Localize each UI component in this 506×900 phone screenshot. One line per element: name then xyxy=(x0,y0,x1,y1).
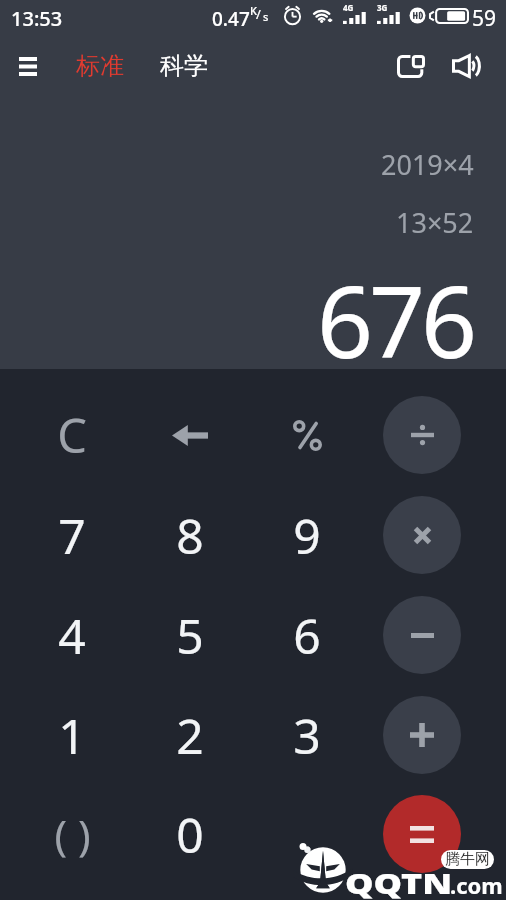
staticText: 标准 xyxy=(76,51,124,81)
staticText: 3G xyxy=(377,2,388,13)
button[interactable]: Minus xyxy=(383,596,461,674)
button[interactable]: 3 xyxy=(249,685,365,785)
button[interactable]: 1 xyxy=(14,685,130,785)
button[interactable]: Backspace xyxy=(132,385,248,485)
button[interactable]: C xyxy=(14,385,130,485)
button[interactable]: 6 xyxy=(249,585,365,685)
button[interactable]: Plus xyxy=(383,696,461,774)
staticText: ( ) xyxy=(54,806,91,863)
staticText: 6 xyxy=(293,603,321,668)
staticText: 59 xyxy=(472,4,497,33)
button[interactable]: Equals xyxy=(383,795,461,873)
staticText: 科学 xyxy=(160,51,208,81)
staticText: 9 xyxy=(293,503,321,568)
staticText: s xyxy=(263,9,269,24)
button[interactable]: ( ) xyxy=(14,784,130,884)
staticText: 7 xyxy=(58,503,86,568)
button[interactable]: . xyxy=(249,784,365,884)
button[interactable]: 4 xyxy=(14,585,130,685)
button[interactable]: Divide xyxy=(383,396,461,474)
staticText: . xyxy=(301,802,314,867)
button[interactable]: 0 xyxy=(132,784,248,884)
button[interactable]: 标准 xyxy=(70,43,130,89)
staticText: K xyxy=(250,3,257,18)
staticText: 2019×4 xyxy=(381,146,474,183)
staticText: 3 xyxy=(293,703,321,768)
staticText: 13×52 xyxy=(396,204,474,241)
staticText: 腾牛网 xyxy=(445,850,490,869)
staticText: 676 xyxy=(317,253,474,369)
button[interactable]: Picture in picture xyxy=(383,42,438,90)
button[interactable]: Menu xyxy=(0,36,56,96)
button[interactable]: Percent xyxy=(249,385,365,485)
button[interactable]: 科学 xyxy=(154,43,214,89)
staticText: 8 xyxy=(176,503,204,568)
button[interactable]: 2 xyxy=(132,685,248,785)
staticText: 13:53 xyxy=(11,5,63,32)
staticText: C xyxy=(57,403,87,467)
button[interactable]: 8 xyxy=(132,485,248,585)
button[interactable]: Sound xyxy=(440,42,492,90)
staticText: 4G xyxy=(343,2,354,13)
staticText: 2 xyxy=(176,703,204,768)
button[interactable]: 7 xyxy=(14,485,130,585)
staticText: 0.47 xyxy=(212,6,250,32)
staticText: 5 xyxy=(176,603,204,668)
staticText: 4 xyxy=(58,603,86,668)
button[interactable]: 5 xyxy=(132,585,248,685)
button[interactable]: 9 xyxy=(249,485,365,585)
staticText: 1 xyxy=(58,703,86,768)
staticText: / xyxy=(256,5,261,23)
staticText: 0 xyxy=(176,802,204,867)
staticText: QQTN xyxy=(345,864,452,900)
button[interactable]: Multiply xyxy=(383,496,461,574)
staticText: .com xyxy=(450,870,503,900)
